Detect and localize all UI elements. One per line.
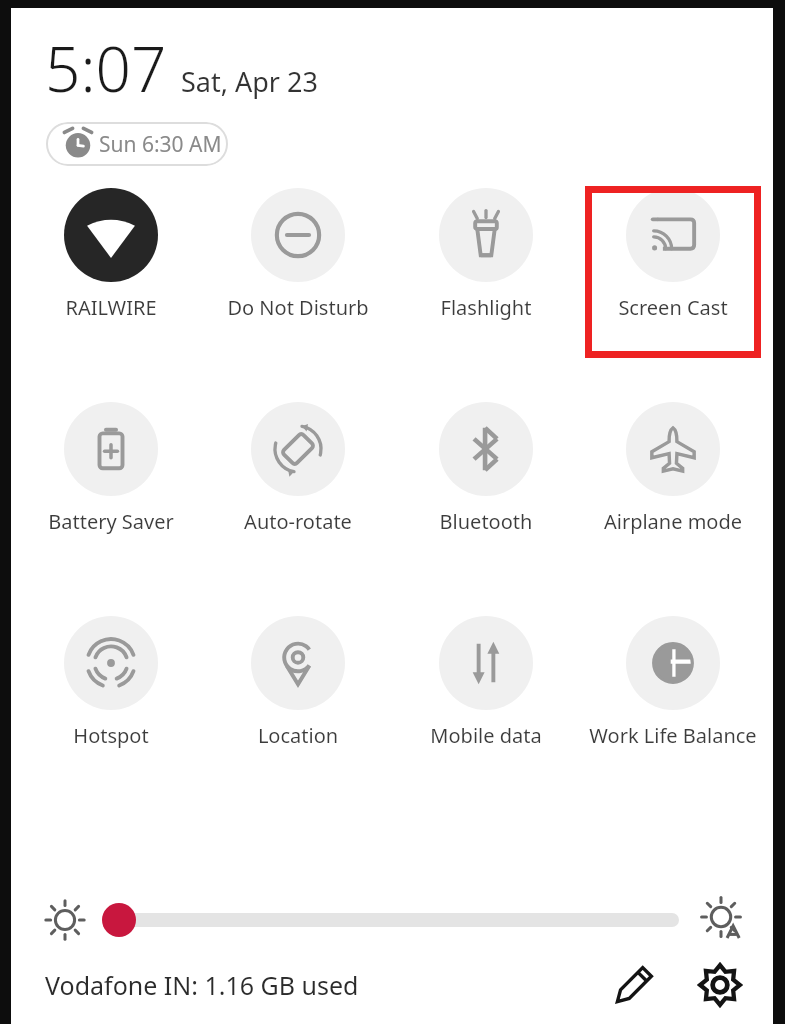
button[interactable]: Airplane mode bbox=[585, 400, 761, 535]
staticText: Airplane mode bbox=[585, 508, 761, 535]
button[interactable]: Flashlight bbox=[398, 186, 574, 321]
staticText: Screen Cast bbox=[585, 294, 761, 321]
staticText: Mobile data bbox=[398, 722, 574, 749]
button[interactable]: Screen Cast bbox=[585, 186, 761, 321]
staticText: Flashlight bbox=[398, 294, 574, 321]
button[interactable]: Auto brightness bbox=[701, 898, 745, 942]
button[interactable]: Sun 6:30 AM bbox=[45, 122, 229, 166]
button[interactable]: Auto-rotate bbox=[210, 400, 386, 535]
button[interactable]: Edit tiles bbox=[611, 962, 657, 1008]
staticText: Do Not Disturb bbox=[210, 294, 386, 321]
button[interactable]: Battery Saver bbox=[23, 400, 199, 535]
button[interactable]: Hotspot bbox=[23, 614, 199, 749]
staticText: Auto-rotate bbox=[210, 508, 386, 535]
button[interactable]: RAILWIRE bbox=[23, 186, 199, 321]
button[interactable]: Mobile data bbox=[398, 614, 574, 749]
staticText: Hotspot bbox=[23, 722, 199, 749]
button[interactable]: Work Life Balance bbox=[585, 614, 761, 749]
staticText: Vodafone IN: 1.16 GB used bbox=[45, 968, 359, 1002]
button[interactable]: Bluetooth bbox=[398, 400, 574, 535]
staticText: Sat, Apr 23 bbox=[181, 63, 318, 100]
button[interactable]: Do Not Disturb bbox=[210, 186, 386, 321]
button[interactable]: Location bbox=[210, 614, 386, 749]
staticText: Battery Saver bbox=[23, 508, 199, 535]
staticText: 5:07 bbox=[45, 26, 167, 110]
staticText: Work Life Balance bbox=[585, 722, 761, 749]
staticText: Location bbox=[210, 722, 386, 749]
button[interactable]: Settings bbox=[697, 962, 743, 1008]
staticText: Bluetooth bbox=[398, 508, 574, 535]
staticText: Sun 6:30 AM bbox=[99, 130, 222, 159]
staticText: RAILWIRE bbox=[23, 294, 199, 321]
button[interactable]: Brightness bbox=[99, 898, 685, 942]
